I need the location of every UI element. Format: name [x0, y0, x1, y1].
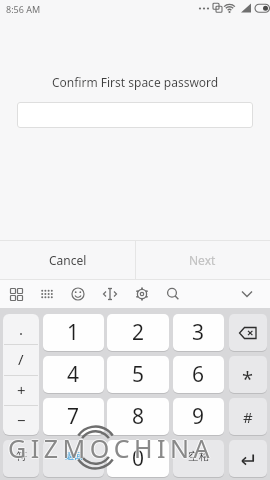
staticText: GIZMOCHINA	[7, 431, 213, 459]
button[interactable]	[229, 440, 267, 477]
staticText: 5	[132, 360, 145, 389]
staticText: 符	[16, 449, 27, 463]
button[interactable]: 8	[107, 398, 169, 435]
staticText: GIZMOCHINA	[8, 431, 214, 459]
staticText: *	[242, 365, 254, 392]
staticText: 8:56 AM	[6, 3, 41, 15]
staticText: 3	[192, 318, 205, 347]
button[interactable]: 9	[173, 398, 224, 435]
staticText: 返回	[65, 450, 83, 461]
staticText: 9	[192, 402, 205, 431]
button[interactable]: 4	[43, 356, 104, 393]
button[interactable]: 1	[43, 314, 104, 351]
staticText: 8	[132, 402, 145, 431]
staticText: 6	[192, 360, 205, 389]
staticText: 2	[132, 318, 145, 347]
button[interactable]: 7	[43, 398, 104, 435]
button[interactable]: Next	[135, 241, 270, 279]
button[interactable]: 2	[107, 314, 169, 351]
staticText: .	[19, 319, 24, 339]
button[interactable]: 3	[173, 314, 224, 351]
staticText: GIZMOCHINA	[8, 430, 214, 458]
staticText: GIZMOCHINA	[8, 432, 214, 460]
button[interactable]: #	[229, 398, 267, 435]
staticText: Next	[189, 252, 216, 268]
staticText: Cancel	[49, 252, 87, 268]
button[interactable]: 0	[107, 440, 169, 477]
button[interactable]: 空格	[173, 440, 224, 477]
staticText: 7	[67, 402, 80, 431]
staticText: −	[17, 410, 26, 430]
staticText: 0	[132, 444, 145, 473]
button[interactable]	[229, 314, 267, 351]
button[interactable]: 5	[107, 356, 169, 393]
staticText: 1	[67, 318, 80, 347]
button[interactable]: 6	[173, 356, 224, 393]
staticText: +	[17, 380, 26, 400]
staticText: 4	[67, 360, 80, 389]
button[interactable]: 返回	[43, 440, 104, 477]
button[interactable]	[17, 102, 253, 128]
button[interactable]: 符	[3, 440, 39, 477]
staticText: GIZMOCHINA	[9, 431, 215, 459]
staticText: Confirm First space password	[52, 74, 219, 90]
staticText: /	[18, 349, 24, 369]
staticText: 空格	[188, 449, 210, 463]
button[interactable]: *	[229, 356, 267, 393]
button[interactable]: Cancel	[0, 241, 135, 279]
staticText: #	[243, 407, 253, 427]
